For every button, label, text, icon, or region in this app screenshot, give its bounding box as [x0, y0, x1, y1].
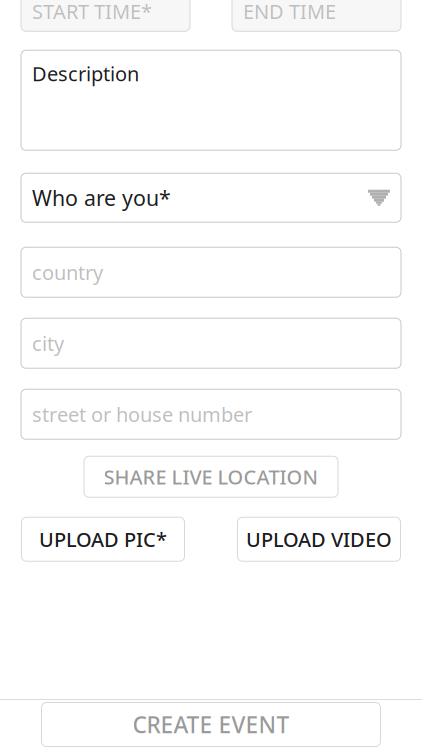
staticText: CREATE EVENT	[132, 709, 289, 739]
staticText: START TIME*	[32, 0, 152, 25]
button[interactable]: country	[21, 247, 401, 297]
staticText: UPLOAD VIDEO	[246, 526, 392, 553]
button[interactable]: city	[21, 318, 401, 368]
button[interactable]: END TIME	[232, 0, 401, 31]
button[interactable]: SHARE LIVE LOCATION	[84, 456, 338, 497]
button[interactable]: START TIME*	[21, 0, 190, 31]
button[interactable]: CREATE EVENT	[41, 702, 380, 746]
button[interactable]: UPLOAD PIC*	[21, 517, 184, 561]
staticText: city	[32, 330, 64, 357]
staticText: UPLOAD PIC*	[39, 526, 167, 553]
staticText: Who are you*	[32, 184, 171, 212]
button[interactable]: street or house number	[21, 389, 401, 439]
staticText: Description	[32, 60, 139, 87]
staticText: street or house number	[32, 401, 252, 428]
button[interactable]: Description	[21, 50, 401, 150]
staticText: country	[32, 259, 103, 286]
button[interactable]: UPLOAD VIDEO	[237, 517, 400, 561]
staticText: SHARE LIVE LOCATION	[103, 463, 318, 490]
staticText: END TIME	[243, 0, 336, 25]
button[interactable]: Who are you*	[21, 173, 401, 222]
